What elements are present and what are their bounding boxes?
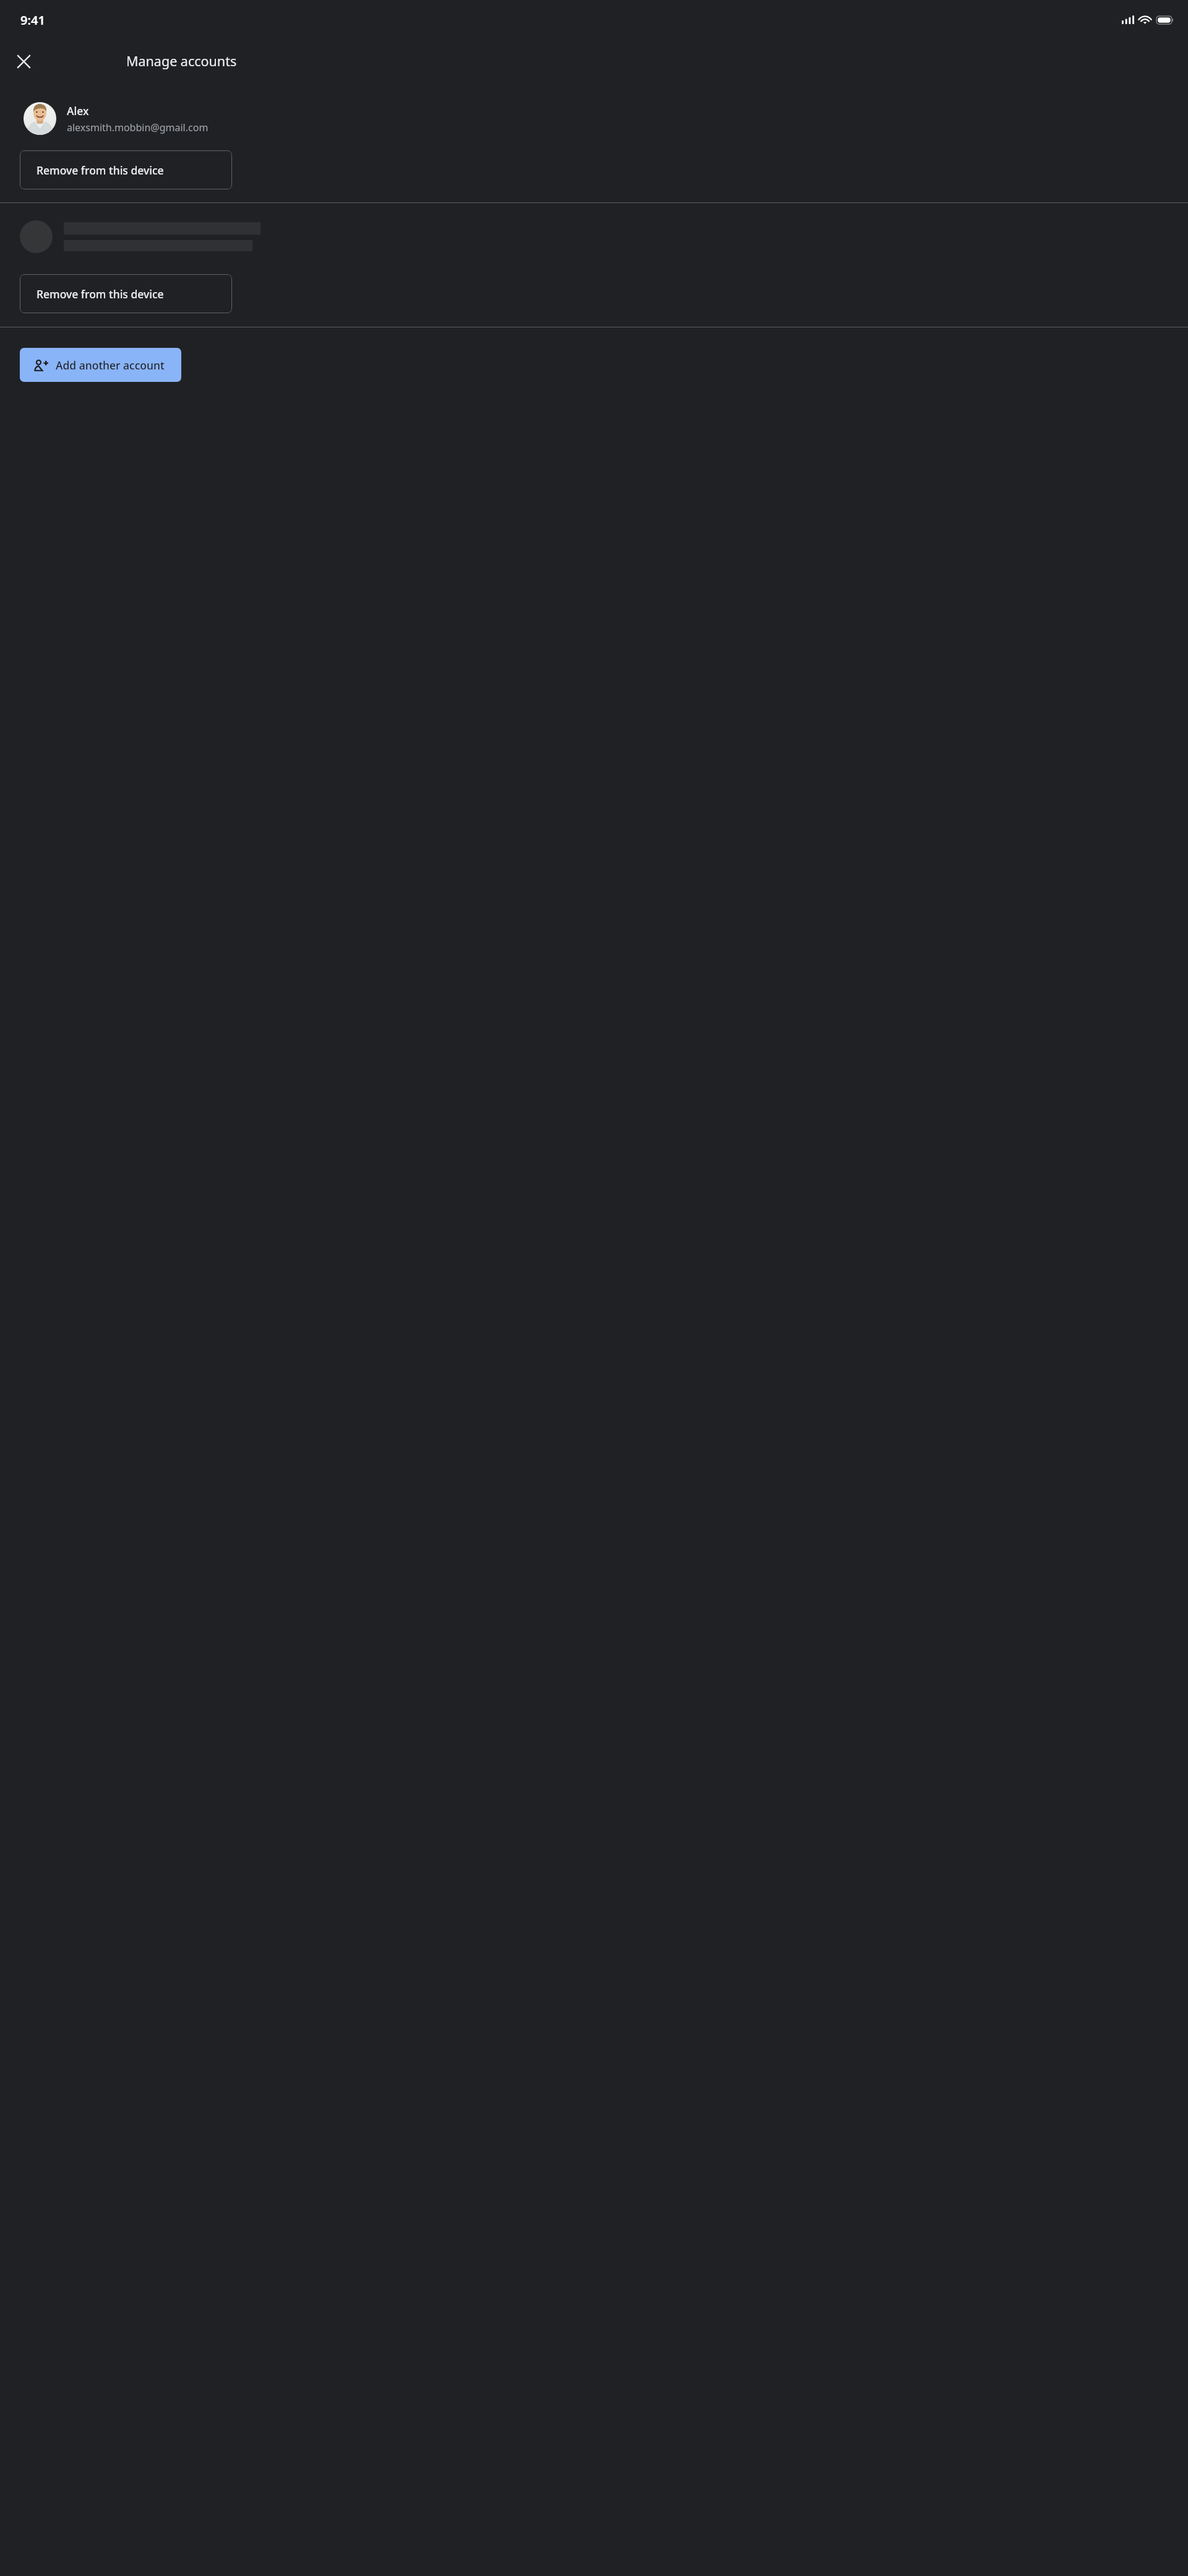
button[interactable]: Remove from this device — [20, 274, 232, 313]
staticText: Remove from this device — [37, 163, 164, 178]
staticText: alexsmith.mobbin@gmail.com — [67, 121, 209, 134]
button[interactable]: Alex — [0, 97, 1188, 140]
staticText: Alex — [67, 103, 89, 118]
staticText: Manage accounts — [126, 52, 237, 70]
staticText: Remove from this device — [37, 287, 164, 301]
staticText: 9:41 — [20, 12, 45, 28]
staticText: Add another account — [56, 358, 165, 373]
button[interactable]: Remove from this device — [20, 150, 232, 189]
button[interactable]: Add another account — [20, 348, 181, 382]
button[interactable]: Close — [9, 46, 38, 76]
